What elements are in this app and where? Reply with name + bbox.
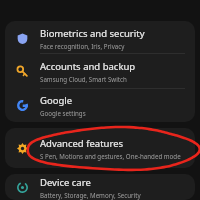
other: Google: [5, 100, 40, 111]
button[interactable]: Accounts and backup: [5, 54, 195, 88]
other: Biometrics and security: [5, 33, 40, 44]
other: Accounts and backup: [5, 66, 40, 77]
staticText: Device care: [40, 176, 91, 189]
other: Advanced features: [5, 143, 40, 154]
button[interactable]: Google: [5, 89, 195, 121]
other: Device care: [5, 182, 40, 193]
staticText: Google: [40, 94, 73, 107]
button[interactable]: Advanced features: [5, 128, 195, 168]
staticText: S Pen, Motions and gestures, One-handed …: [40, 152, 181, 160]
staticText: Google settings: [40, 109, 86, 117]
staticText: Accounts and backup: [40, 60, 136, 73]
staticText: Biometrics and security: [40, 27, 145, 40]
staticText: Advanced features: [40, 137, 124, 150]
staticText: Face recognition, Iris, Privacy: [40, 42, 125, 50]
button[interactable]: Biometrics and security: [5, 23, 195, 53]
staticText: Battery, Storage, Memory, Security: [40, 191, 141, 199]
button[interactable]: Device care: [5, 174, 195, 200]
staticText: Samsung Cloud, Smart Switch: [40, 75, 127, 83]
